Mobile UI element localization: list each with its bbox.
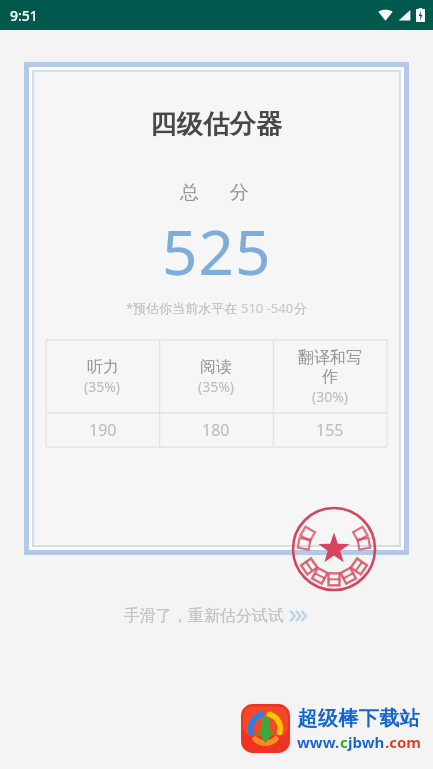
staticText: (35%) (198, 377, 235, 396)
staticText: 翻译和写 作 (298, 348, 362, 387)
other: 超级棒下载站 www.cjbwh.com (241, 704, 421, 753)
staticText: 9:51 (10, 6, 38, 25)
staticText: 手滑了，重新估分试试 (124, 606, 284, 626)
staticText: jbwh (348, 732, 385, 752)
staticText: c (340, 732, 348, 752)
staticText: (35%) (84, 377, 121, 396)
staticText: 180 (202, 419, 230, 441)
staticText: 四级估分器 (150, 108, 283, 141)
staticText: 阅读 (200, 357, 232, 377)
staticText: (30%) (312, 387, 349, 406)
staticText: 总 分 (180, 179, 253, 205)
staticText: 525 (162, 209, 272, 293)
staticText: *预估你当前水平在 (126, 299, 241, 317)
staticText: 510 -540 (241, 299, 294, 317)
staticText: www. (297, 732, 340, 752)
staticText: 听力 (87, 357, 119, 377)
staticText: 超级棒下载站 (297, 706, 420, 731)
staticText: .com (385, 732, 421, 752)
staticText: 分 (294, 300, 307, 316)
staticText: 190 (89, 419, 117, 441)
staticText: 155 (316, 419, 344, 441)
button[interactable]: 手滑了，重新估分试试 (100, 598, 334, 634)
